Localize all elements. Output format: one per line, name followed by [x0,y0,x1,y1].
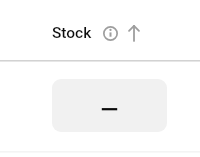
staticText: Stock [52,24,92,42]
button[interactable]: Sort ascending [124,23,143,42]
button[interactable] [52,79,167,132]
button[interactable]: Information [101,24,119,42]
